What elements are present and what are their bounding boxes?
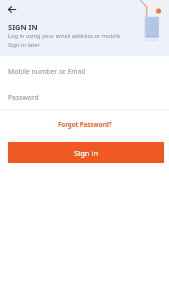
- staticText: Forgot Password?: [58, 120, 112, 128]
- staticText: Sign in later: [8, 41, 40, 49]
- button[interactable]: Password: [0, 87, 169, 107]
- staticText: Mobile number or Email: [8, 67, 86, 76]
- button[interactable]: Sign in: [8, 142, 164, 163]
- staticText: Log in using your email address or mobil…: [8, 32, 121, 40]
- button[interactable]: Back: [2, 0, 21, 19]
- staticText: Password: [8, 93, 39, 102]
- button[interactable]: Mobile number or Email: [0, 61, 169, 81]
- button[interactable]: Sign in later: [6, 40, 42, 50]
- button[interactable]: Forgot Password?: [52, 117, 118, 131]
- staticText: Sign in: [74, 148, 99, 158]
- staticText: SIGN IN: [8, 22, 38, 32]
